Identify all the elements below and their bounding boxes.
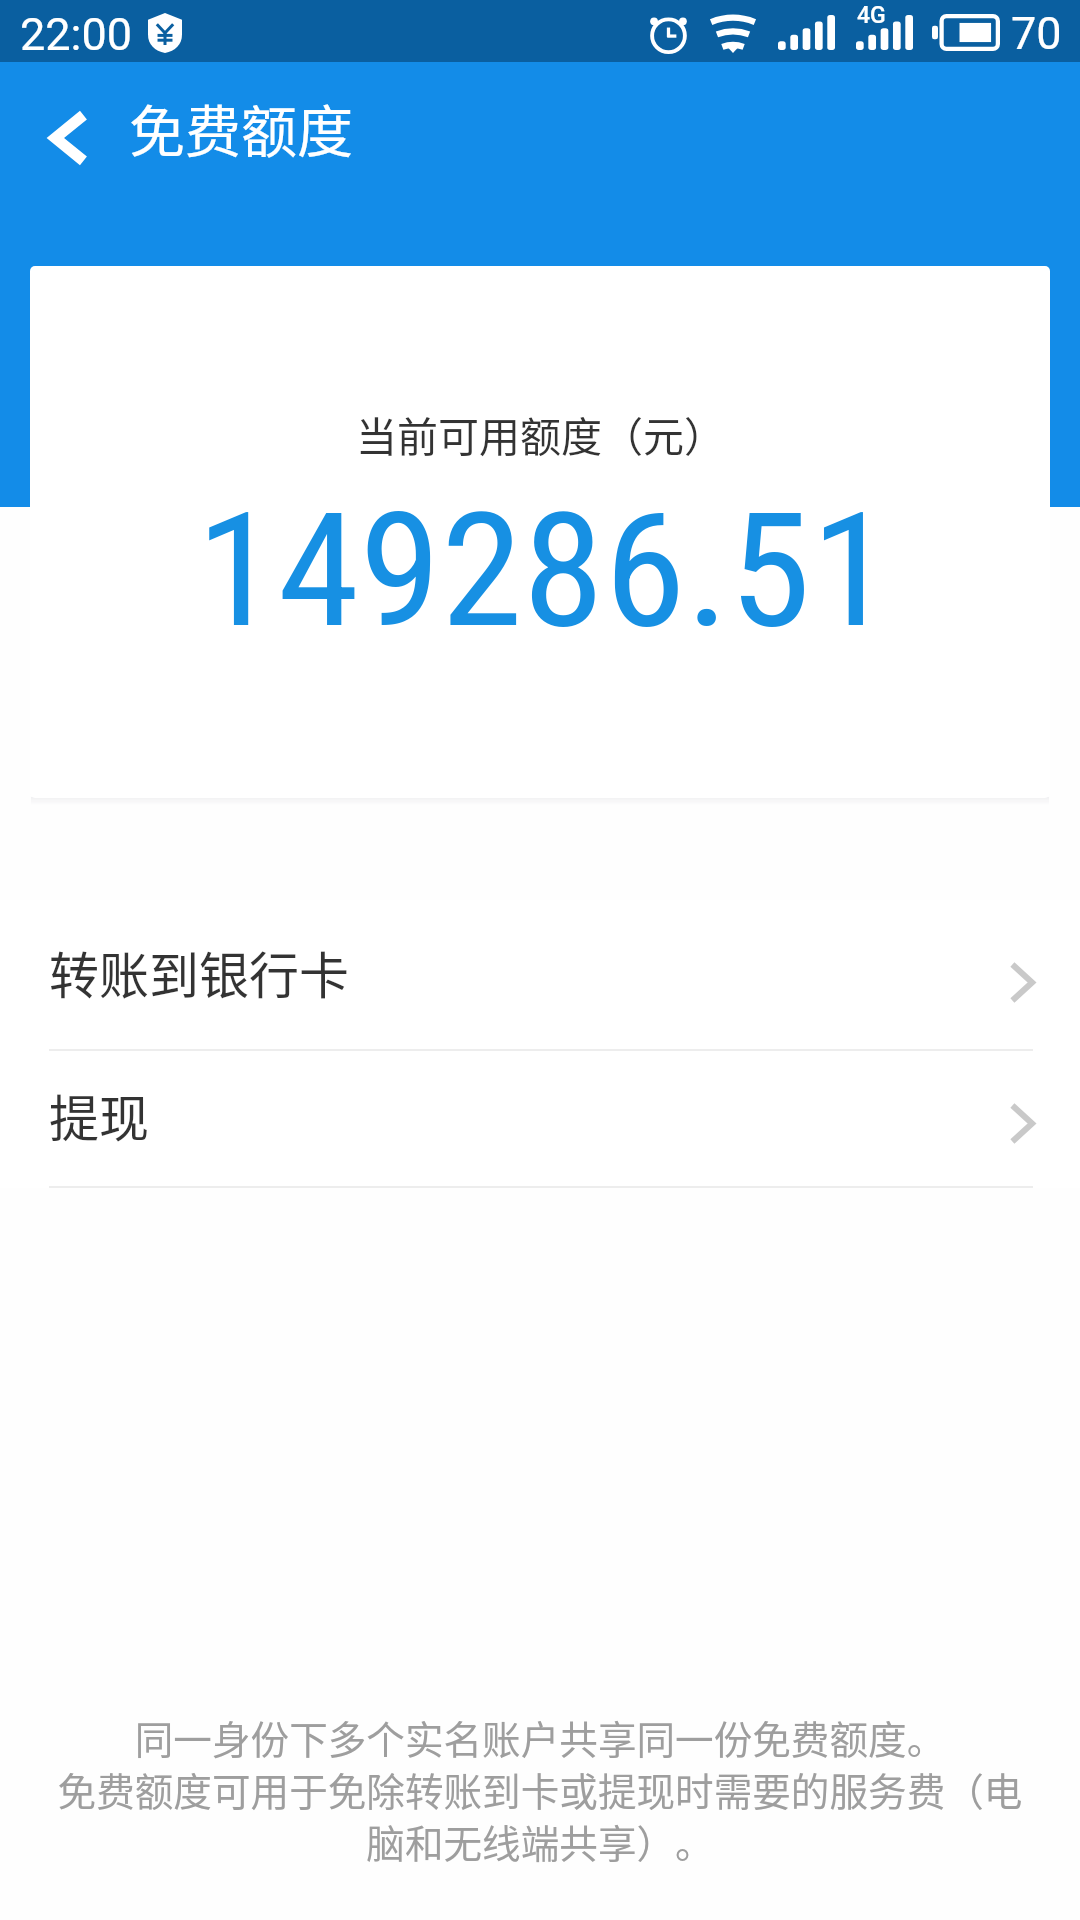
staticText: 转账到银行卡 [49,936,349,1008]
staticText: 22:00 [20,8,133,61]
staticText: 免费额度 [129,87,353,168]
staticText: 4G [857,2,886,29]
button[interactable]: 转账到银行卡 [0,900,1080,1049]
staticText: 同一身份下多个实名账户共享同一份免费额度。 免费额度可用于免除转账到卡或提现时需… [35,1709,1045,1869]
staticText: 提现 [49,1079,149,1151]
staticText: 149286.51 [196,479,893,663]
staticText: 当前可用额度（元） [356,404,725,463]
button[interactable]: Back [0,44,132,214]
staticText: 70 [1011,7,1062,60]
button[interactable]: 提现 [0,1051,1080,1186]
